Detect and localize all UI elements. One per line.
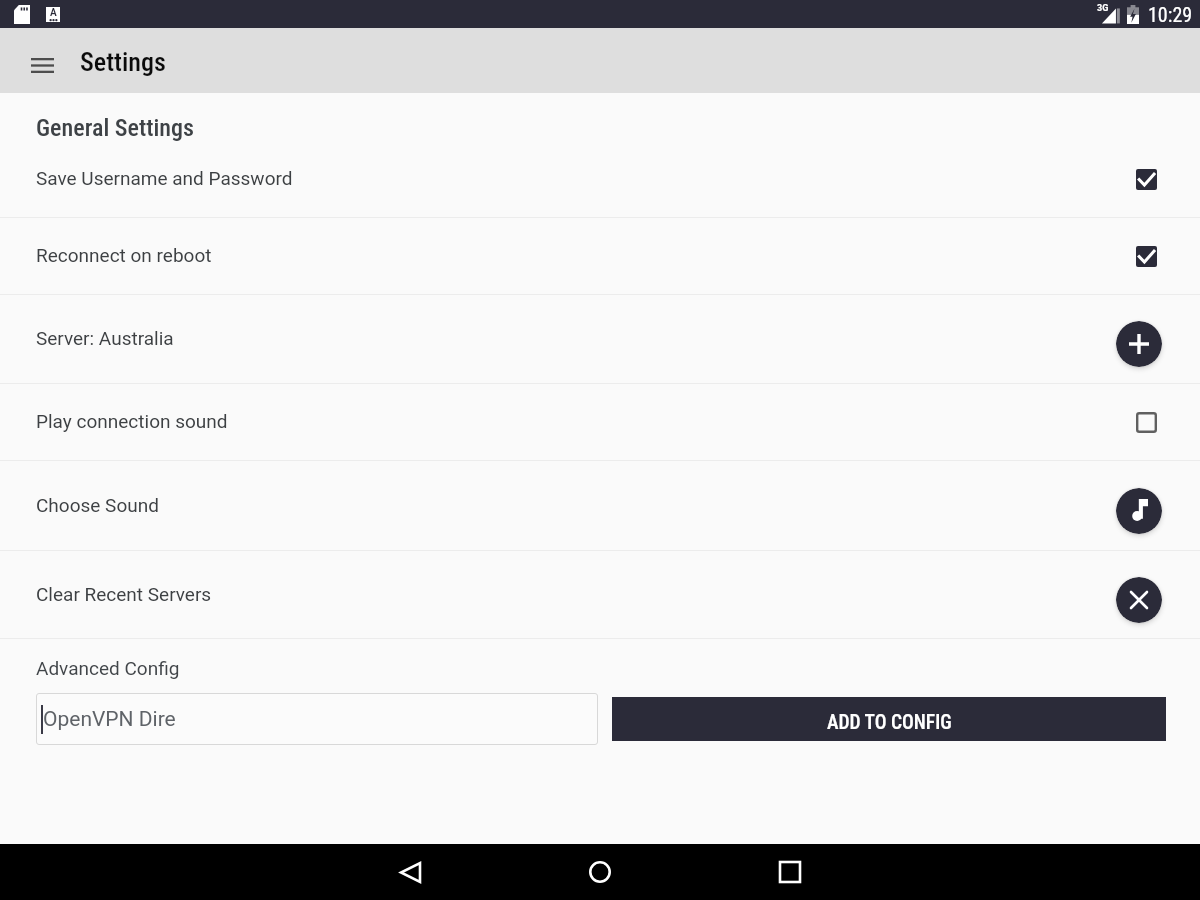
button[interactable]: Play connection sound, unchecked <box>1128 404 1164 440</box>
staticText: Save Username and Password <box>36 167 1130 189</box>
button[interactable]: Open navigation menu <box>20 39 64 83</box>
staticText: Settings <box>80 47 166 77</box>
button[interactable]: Clear recent servers <box>1116 577 1162 623</box>
button[interactable]: Save setting, checked <box>1128 238 1164 274</box>
staticText: Choose Sound <box>36 494 1120 516</box>
staticText: 3G <box>1097 3 1109 14</box>
button[interactable]: Reconnect on reboot <box>0 218 1200 294</box>
staticText: Advanced Config <box>36 657 180 679</box>
button[interactable]: Add server <box>1116 321 1162 367</box>
button[interactable]: Home <box>572 844 628 900</box>
button[interactable]: Choose Sound <box>0 461 1200 550</box>
button[interactable]: Back <box>382 844 438 900</box>
button[interactable]: Choose sound <box>1116 488 1162 534</box>
staticText: A <box>50 7 57 19</box>
staticText: Clear Recent Servers <box>36 583 1120 605</box>
staticText: Play connection sound <box>36 410 1130 432</box>
staticText: General Settings <box>36 114 194 142</box>
button[interactable]: Save Username and Password <box>0 140 1200 217</box>
button[interactable]: OpenVPN Dire <box>36 693 598 745</box>
staticText: Reconnect on reboot <box>36 244 1130 266</box>
staticText: ADD TO CONFIG <box>827 711 952 734</box>
staticText: OpenVPN Dire <box>43 707 176 732</box>
button[interactable]: Recent apps <box>762 844 818 900</box>
button[interactable]: Clear Recent Servers <box>0 551 1200 638</box>
button[interactable]: Server: Australia <box>0 295 1200 383</box>
button[interactable]: Save setting, checked <box>1128 161 1164 197</box>
button[interactable]: Play connection sound <box>0 384 1200 460</box>
button[interactable]: ADD TO CONFIG <box>612 697 1166 741</box>
staticText: 10:29 <box>1148 3 1193 26</box>
staticText: Server: Australia <box>36 327 1120 349</box>
